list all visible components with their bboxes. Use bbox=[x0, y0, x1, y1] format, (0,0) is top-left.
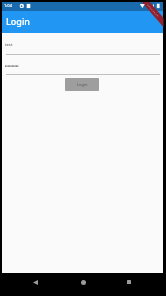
button[interactable]: Home bbox=[71, 273, 95, 291]
button[interactable]: Login bbox=[65, 78, 99, 91]
button[interactable]: Back bbox=[23, 273, 47, 291]
staticText: Login bbox=[6, 15, 30, 27]
button[interactable]: test bbox=[2, 33, 163, 55]
button[interactable] bbox=[2, 55, 163, 75]
staticText: 1:04 bbox=[4, 3, 12, 8]
staticText: Login bbox=[77, 82, 88, 87]
staticText: test bbox=[5, 42, 13, 48]
button[interactable]: Recents bbox=[117, 273, 141, 291]
